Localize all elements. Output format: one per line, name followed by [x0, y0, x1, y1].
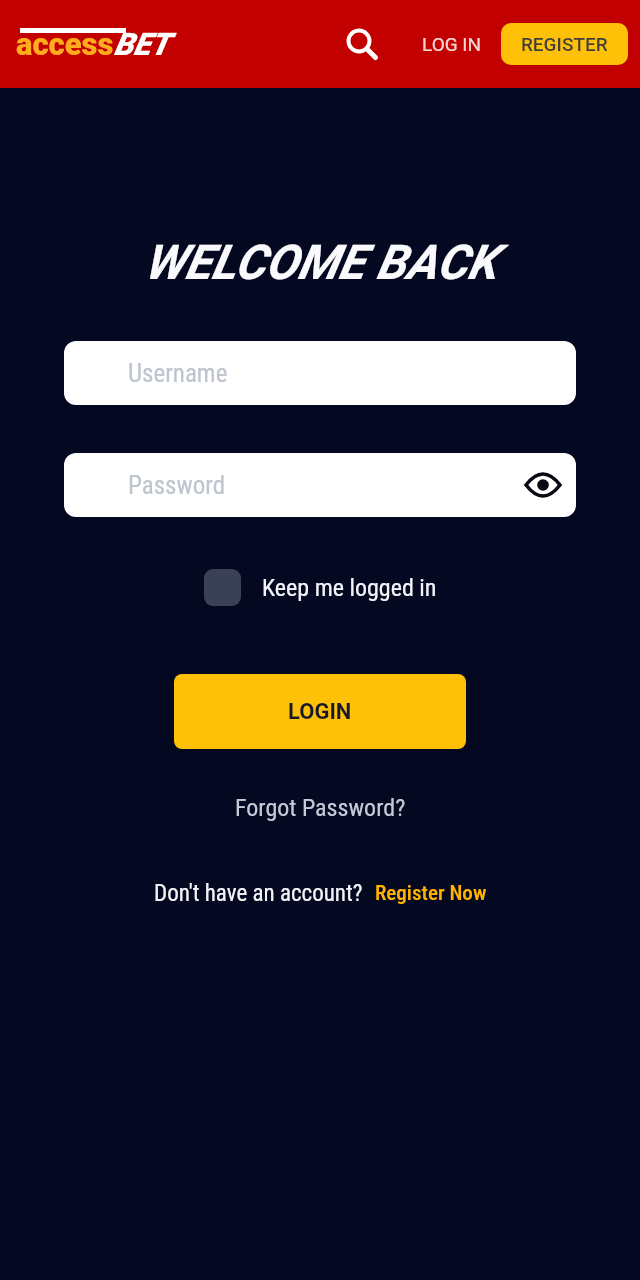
button[interactable]: Keep me logged in [204, 569, 437, 606]
staticText: WELCOME BACK [144, 234, 497, 290]
button[interactable]: LOG IN [422, 33, 482, 55]
staticText: Password [128, 471, 226, 500]
staticText: Keep me logged in [262, 574, 437, 602]
button[interactable]: Username [64, 341, 576, 405]
button[interactable]: Password [64, 453, 576, 517]
button[interactable] [346, 28, 378, 60]
staticText: Don't have an account? [154, 880, 363, 907]
button[interactable]: REGISTER [501, 23, 628, 65]
button[interactable]: Register Now [375, 881, 487, 906]
staticText: BET [114, 26, 170, 62]
staticText: Username [128, 359, 228, 388]
staticText: REGISTER [521, 33, 608, 55]
button[interactable]: LOGIN [174, 674, 466, 749]
button[interactable]: access [16, 26, 170, 62]
button[interactable]: Forgot Password? [235, 794, 406, 822]
staticText: access [16, 26, 114, 62]
staticText: LOGIN [288, 699, 352, 725]
